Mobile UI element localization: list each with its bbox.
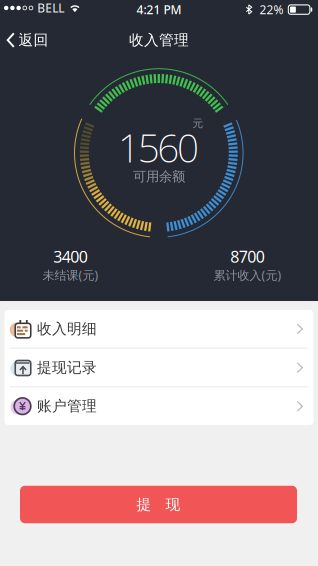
staticText: BELL <box>37 0 64 16</box>
staticText: 返回 <box>18 31 48 49</box>
staticText: 收入明细 <box>37 320 97 338</box>
button[interactable]: 收入明细 <box>4 310 313 348</box>
staticText: 3400 <box>53 246 88 267</box>
staticText: 4:21 PM <box>136 2 181 18</box>
staticText: 22% <box>259 2 283 18</box>
staticText: 现 <box>165 495 180 513</box>
staticText: 账户管理 <box>37 397 97 415</box>
staticText: 8700 <box>230 246 265 267</box>
button[interactable]: 账户管理 <box>4 387 313 425</box>
button[interactable]: 提现记录 <box>4 349 313 386</box>
staticText: 提 <box>136 495 151 513</box>
staticText: 1560 <box>118 122 199 173</box>
staticText: 未结课(元) <box>42 267 98 283</box>
staticText: 元 <box>192 117 203 130</box>
button[interactable]: 提 <box>20 486 297 523</box>
staticText: 提现记录 <box>37 358 97 376</box>
staticText: 收入管理 <box>129 31 189 49</box>
button[interactable]: 返回 <box>6 31 48 49</box>
staticText: 累计收入(元) <box>213 267 281 283</box>
staticText: 可用余额 <box>133 168 185 185</box>
